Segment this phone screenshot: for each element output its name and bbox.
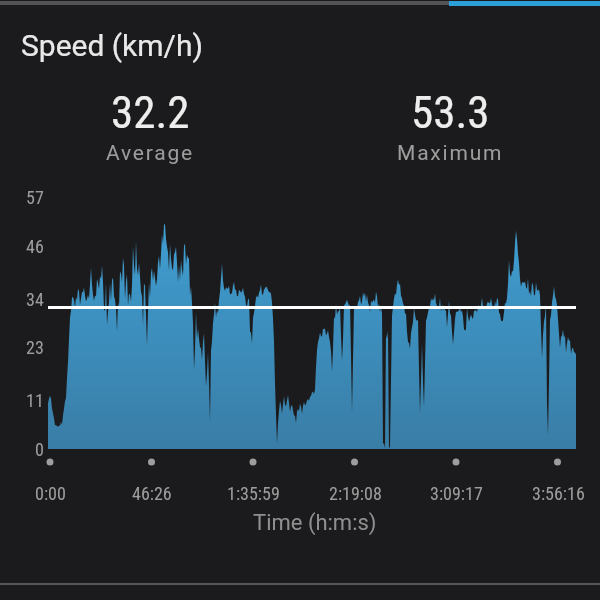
staticText: 0:00 <box>35 483 66 504</box>
staticText: Maximum <box>397 141 504 166</box>
staticText: 57 <box>26 187 44 208</box>
staticText: 1:35:59 <box>227 483 280 504</box>
staticText: 46 <box>26 236 44 257</box>
staticText: Speed (km/h) <box>21 28 203 63</box>
staticText: 3:56:16 <box>532 483 585 504</box>
staticText: Time (h:m:s) <box>253 510 377 536</box>
staticText: Average <box>106 141 195 166</box>
staticText: 11 <box>26 390 44 411</box>
staticText: 53.3 <box>411 86 490 139</box>
staticText: 34 <box>26 289 44 310</box>
staticText: 0 <box>35 439 44 460</box>
staticText: 3:09:17 <box>430 483 483 504</box>
staticText: 32.2 <box>111 86 190 139</box>
staticText: 46:26 <box>132 483 172 504</box>
staticText: 2:19:08 <box>329 483 382 504</box>
staticText: 23 <box>26 337 44 358</box>
